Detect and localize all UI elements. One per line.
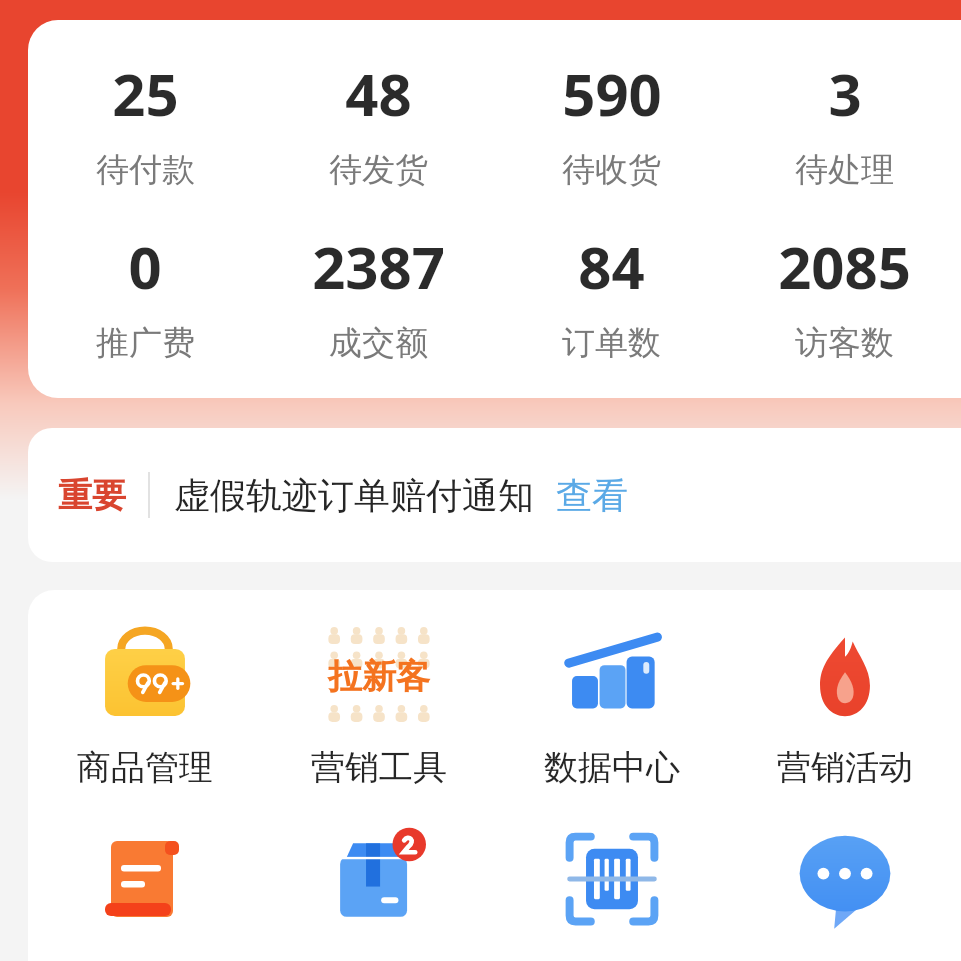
- button[interactable]: 发货管理: [262, 819, 495, 939]
- staticText: 590: [562, 54, 662, 133]
- button[interactable]: 590: [495, 54, 728, 191]
- button[interactable]: 拉新客: [262, 616, 495, 789]
- staticText: 访客数: [795, 322, 894, 364]
- staticText: 2387: [312, 227, 445, 306]
- staticText: 2085: [778, 227, 911, 306]
- button[interactable]: 订单管理: [28, 819, 262, 939]
- staticText: 重要: [58, 474, 126, 517]
- staticText: 待发货: [329, 149, 428, 191]
- staticText: 待收货: [562, 149, 661, 191]
- button[interactable]: 重要: [28, 428, 961, 562]
- staticText: 0: [128, 227, 162, 306]
- button[interactable]: 数据中心: [495, 616, 728, 789]
- staticText: 待处理: [795, 149, 894, 191]
- button[interactable]: 更多服务: [728, 819, 961, 939]
- staticText: 25: [112, 54, 179, 133]
- button[interactable]: 营销活动: [728, 616, 961, 789]
- button[interactable]: 0: [28, 227, 262, 364]
- staticText: 数据中心: [544, 746, 680, 789]
- staticText: 拉新客: [328, 655, 430, 698]
- staticText: 虚假轨迹订单赔付通知: [174, 473, 534, 518]
- button[interactable]: 2085: [728, 227, 961, 364]
- staticText: 3: [828, 54, 862, 133]
- button[interactable]: 查看: [556, 473, 628, 518]
- staticText: 营销工具: [311, 746, 447, 789]
- button[interactable]: 扫码核销: [495, 819, 728, 939]
- staticText: 待付款: [96, 149, 195, 191]
- button[interactable]: 25: [28, 54, 262, 191]
- button[interactable]: 84: [495, 227, 728, 364]
- staticText: 84: [578, 227, 645, 306]
- button[interactable]: 2387: [262, 227, 495, 364]
- staticText: 商品管理: [77, 746, 213, 789]
- staticText: 营销活动: [777, 746, 913, 789]
- staticText: 推广费: [96, 322, 195, 364]
- button[interactable]: 48: [262, 54, 495, 191]
- staticText: 48: [345, 54, 412, 133]
- staticText: 成交额: [329, 322, 428, 364]
- button[interactable]: 3: [728, 54, 961, 191]
- staticText: 订单数: [562, 322, 661, 364]
- button[interactable]: 商品管理: [28, 616, 262, 789]
